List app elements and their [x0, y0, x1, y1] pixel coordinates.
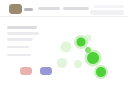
button[interactable]: Blue tag: [40, 67, 52, 75]
button[interactable]: Red tag: [20, 67, 32, 75]
button[interactable]: Account: [90, 5, 124, 15]
button[interactable]: App icon: [9, 4, 22, 14]
